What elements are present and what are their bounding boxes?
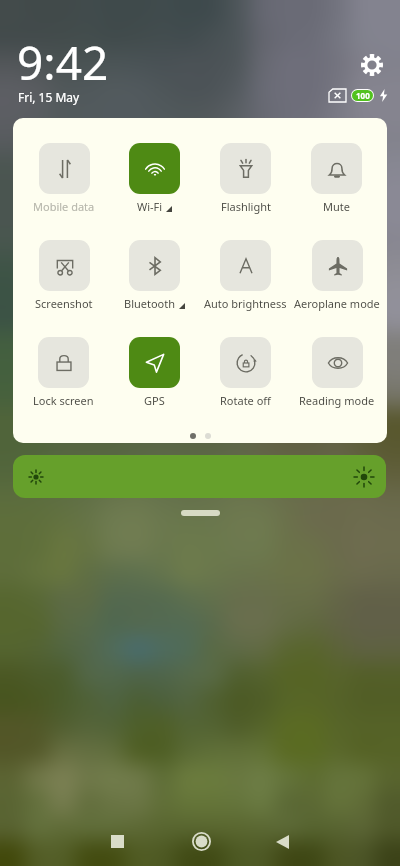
button[interactable]: Aeroplane mode (312, 240, 363, 291)
button[interactable]: GPS (129, 337, 180, 388)
button[interactable]: Mute (311, 143, 362, 194)
button[interactable]: Brightness (13, 455, 386, 498)
staticText: Screenshot (35, 296, 93, 311)
button[interactable]: Flashlight (220, 143, 271, 194)
button[interactable]: Auto brightness (220, 240, 271, 291)
staticText: Fri, 15 May (18, 89, 80, 105)
staticText: Wi-Fi (137, 199, 163, 214)
staticText: 9:42 (17, 31, 109, 94)
staticText: 100 (356, 90, 370, 101)
button[interactable]: Back (242, 818, 325, 866)
button[interactable]: Reading mode (312, 337, 363, 388)
staticText: Auto brightness (204, 296, 287, 311)
button[interactable]: Screenshot (39, 240, 90, 291)
staticText: Mobile data (33, 199, 95, 214)
button[interactable]: Wi-Fi (129, 143, 180, 194)
button[interactable]: Settings (361, 54, 383, 76)
staticText: Flashlight (221, 199, 271, 214)
button[interactable]: Bluetooth (129, 240, 180, 291)
staticText: Bluetooth (124, 296, 176, 311)
staticText: Mute (323, 199, 350, 214)
staticText: Lock screen (33, 393, 94, 408)
button[interactable]: Recents (76, 818, 159, 866)
button[interactable]: Lock screen (38, 337, 89, 388)
staticText: Reading mode (299, 393, 375, 408)
staticText: Rotate off (220, 393, 271, 408)
button[interactable]: Home (159, 818, 242, 866)
staticText: GPS (144, 393, 165, 408)
staticText: Aeroplane mode (294, 296, 380, 311)
button[interactable]: Rotate off (220, 337, 271, 388)
button[interactable]: Mobile data (39, 143, 90, 194)
